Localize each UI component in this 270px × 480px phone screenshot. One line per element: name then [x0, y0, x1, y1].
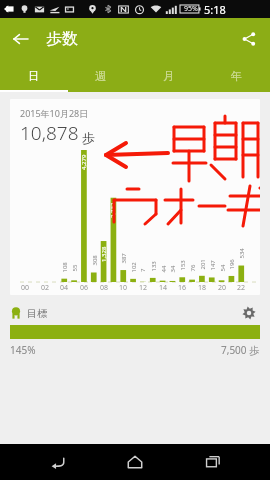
staticText: 06 [80, 283, 89, 293]
button[interactable]: Home [115, 444, 155, 480]
staticText: 16 [178, 283, 187, 293]
staticText: 月 [163, 69, 174, 83]
staticText: 308 [90, 254, 98, 265]
staticText: 54 [218, 264, 226, 271]
button[interactable]: Back [0, 18, 42, 60]
staticText: 歩数 [46, 29, 78, 49]
staticText: 22 [237, 283, 246, 293]
staticText: 34 [168, 265, 176, 272]
staticText: 108 [60, 261, 68, 272]
staticText: 歩 [82, 130, 95, 146]
staticText: 133 [149, 260, 157, 271]
button[interactable]: 週 [67, 60, 134, 92]
staticText: 196 [227, 258, 235, 269]
staticText: 08 [100, 283, 109, 293]
staticText: 145% [10, 343, 36, 357]
staticText: 7 [139, 268, 147, 272]
staticText: 4,279 [80, 154, 88, 170]
staticText: 387 [119, 252, 127, 263]
staticText: 147 [208, 259, 216, 270]
staticText: 04 [60, 283, 69, 293]
staticText: 2,732 [109, 202, 117, 218]
button[interactable]: Settings [238, 302, 260, 324]
button[interactable]: Back [38, 444, 78, 480]
staticText: 7,500 歩 [221, 343, 260, 357]
staticText: 2015年10月28日 [20, 107, 89, 119]
button[interactable]: 日 [0, 60, 67, 92]
staticText: 目標 [27, 307, 47, 320]
staticText: 1,328 [100, 246, 108, 262]
staticText: 534 [237, 247, 245, 258]
staticText: 年 [231, 69, 242, 83]
staticText: 20 [218, 283, 227, 293]
button[interactable]: 2015年10月28日 [10, 99, 260, 295]
button[interactable]: 月 [134, 60, 202, 92]
staticText: 週 [95, 69, 106, 83]
staticText: 102 [129, 261, 137, 272]
staticText: 5:18 [204, 2, 226, 17]
button[interactable]: Share [228, 18, 270, 60]
staticText: 76 [188, 264, 196, 271]
button[interactable]: 年 [202, 60, 270, 92]
staticText: 日 [28, 69, 39, 83]
staticText: 55 [70, 264, 78, 271]
staticText: 10,878 [20, 120, 79, 146]
staticText: 10 [119, 283, 128, 293]
staticText: 95% [184, 4, 198, 14]
staticText: 201 [198, 258, 206, 269]
button[interactable]: Recent apps [193, 444, 233, 480]
staticText: 00 [21, 283, 30, 293]
staticText: 18 [198, 283, 207, 293]
staticText: 153 [178, 259, 186, 270]
staticText: 12 [139, 283, 148, 293]
staticText: 02 [41, 283, 50, 293]
staticText: 44 [159, 265, 167, 272]
staticText: 14 [159, 283, 168, 293]
